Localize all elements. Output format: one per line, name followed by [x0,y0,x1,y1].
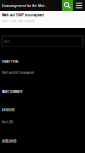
staticText: March 17, 2014 · Leave a comment [2,19,35,23]
staticText: Match and SOAP encouragement [2,12,44,18]
staticText: March 2014 [2,120,13,124]
staticText: Match and SOAP encouragement [2,70,34,75]
staticText: ARCHIVES [2,108,14,113]
staticText: RECENT COMMENTS [2,90,22,94]
button[interactable]: Search … [2,36,83,47]
button[interactable]: Match and SOAP encouragement [2,70,83,75]
staticText: RECENT POSTS [2,59,18,64]
button[interactable]: Menu [73,0,85,11]
staticText: Encouragement for the Mat… [2,2,47,9]
button[interactable]: Search [62,0,73,11]
staticText: Search … [3,39,12,44]
button[interactable]: March 2014 [2,120,83,124]
staticText: CATEGORIES [2,139,16,144]
